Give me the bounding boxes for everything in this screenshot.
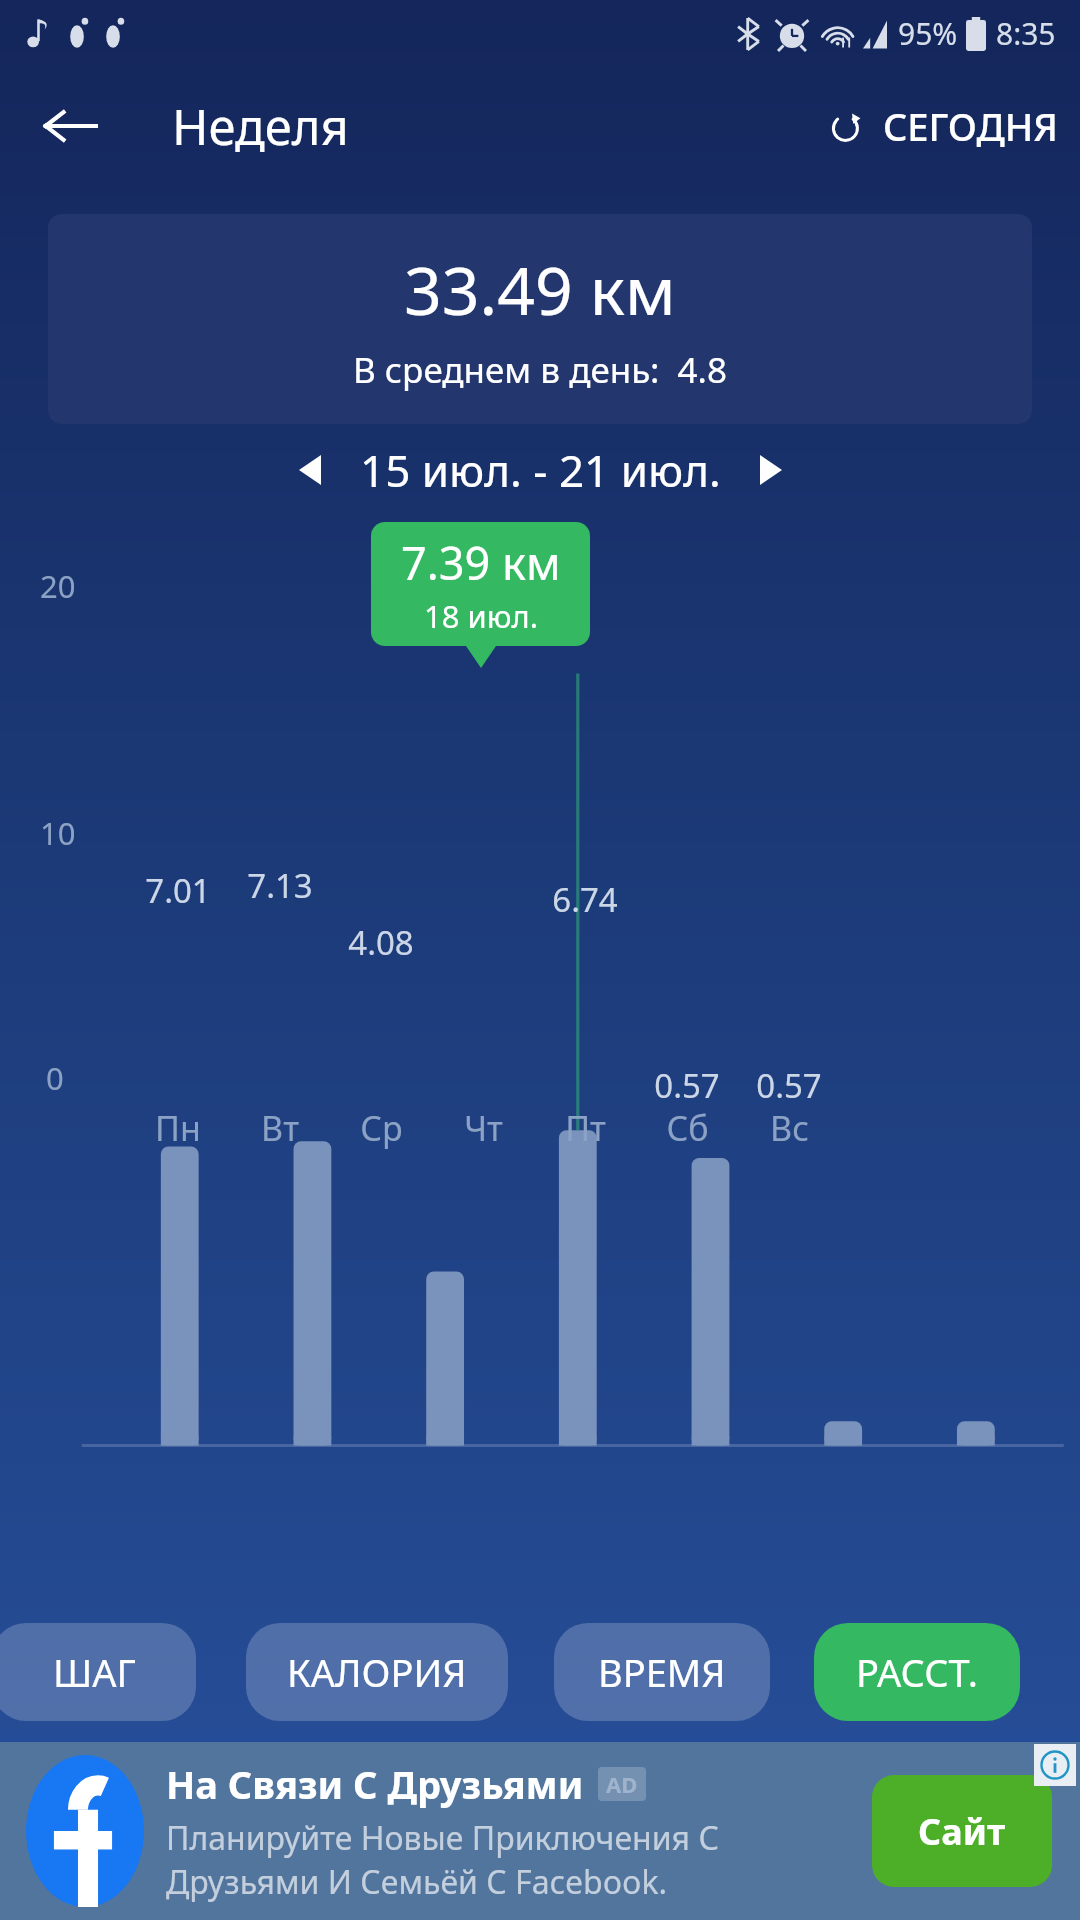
button[interactable]: 33.49 км (48, 214, 1032, 424)
button[interactable]: КАЛОРИЯ (246, 1623, 508, 1721)
staticText: Сайт (918, 1807, 1006, 1856)
staticText: 7.01 (145, 868, 211, 913)
button[interactable]: Вт (233, 1105, 327, 1151)
staticText: Вс (770, 1105, 809, 1151)
staticText: Сб (666, 1105, 709, 1151)
staticText: 0.57 (756, 1063, 822, 1108)
button[interactable]: Go to today (827, 100, 1058, 152)
staticText: AD (606, 1769, 638, 1799)
staticText: ВРЕМЯ (598, 1646, 726, 1698)
staticText: 18 июл. (424, 595, 539, 637)
staticText: СЕГОДНЯ (883, 100, 1058, 152)
button[interactable]: Вс (742, 1105, 836, 1151)
staticText: 95% (898, 13, 958, 54)
staticText: 10 (40, 812, 76, 854)
staticText: Друзьями И Семьёй С Facebook. (166, 1860, 668, 1904)
button[interactable]: Чт (436, 1105, 530, 1151)
button[interactable]: Пт (538, 1105, 632, 1151)
button[interactable]: Сб (640, 1105, 734, 1151)
staticText: 7.39 км (401, 532, 561, 593)
staticText: 20 (40, 565, 76, 607)
button[interactable]: Пн (131, 1105, 225, 1151)
staticText: 7.13 (247, 863, 313, 908)
staticText: КАЛОРИЯ (287, 1646, 467, 1698)
button[interactable]: Сайт (872, 1775, 1052, 1887)
button[interactable]: Ср (334, 1105, 428, 1151)
staticText: РАССТ. (856, 1646, 978, 1698)
staticText: 33.49 км (404, 244, 676, 334)
staticText: ШАГ (53, 1646, 136, 1698)
staticText: В среднем в день: 4.8 (353, 346, 727, 394)
staticText: 15 июл. - 21 июл. (360, 440, 721, 500)
staticText: Ср (360, 1105, 403, 1151)
staticText: Пт (565, 1105, 606, 1151)
staticText: 4.08 (348, 920, 414, 965)
button[interactable]: 7.39 км (371, 522, 590, 668)
button[interactable]: Previous week (278, 438, 342, 502)
button[interactable]: Next week (739, 438, 803, 502)
button[interactable]: РАССТ. (814, 1623, 1020, 1721)
button[interactable]: На Связи С Друзьями (0, 1742, 1080, 1920)
staticText: 0.57 (654, 1063, 720, 1108)
button[interactable]: Back (30, 86, 110, 166)
staticText: 6.74 (552, 877, 618, 922)
staticText: Неделя (172, 93, 349, 160)
staticText: Чт (464, 1105, 503, 1151)
button[interactable]: Ad info (1034, 1744, 1076, 1786)
staticText: 8:35 (996, 13, 1056, 54)
button[interactable]: ВРЕМЯ (554, 1623, 770, 1721)
staticText: 0 (46, 1057, 64, 1099)
staticText: На Связи С Друзьями (166, 1758, 584, 1810)
button[interactable]: ШАГ (0, 1623, 196, 1721)
staticText: Пн (155, 1105, 201, 1151)
staticText: Планируйте Новые Приключения С (166, 1816, 719, 1860)
staticText: Вт (261, 1105, 299, 1151)
other: Go to today (827, 106, 867, 146)
